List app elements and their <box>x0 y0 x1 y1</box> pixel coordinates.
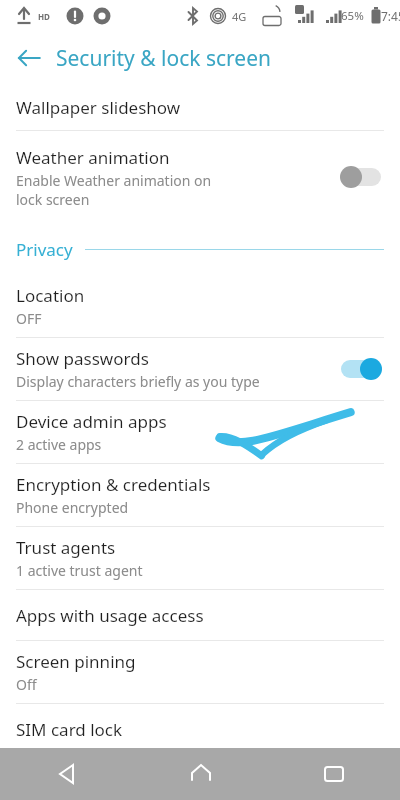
staticText: Device admin apps <box>16 410 167 433</box>
staticText: 1 active trust agent <box>16 561 143 580</box>
staticText: Privacy <box>16 238 73 261</box>
button[interactable]: Encryption & credentials <box>0 464 400 526</box>
staticText: Screen pinning <box>16 650 136 673</box>
button[interactable]: Weather animation <box>0 131 400 223</box>
staticText: Show passwords <box>16 347 149 370</box>
staticText: 7:45 <box>381 8 400 24</box>
staticText: 65% <box>341 8 364 24</box>
staticText: 4G <box>232 9 247 24</box>
staticText: 2 active apps <box>16 435 102 454</box>
button[interactable]: Back <box>0 748 134 800</box>
button[interactable]: Back <box>6 35 52 81</box>
staticText: Phone encrypted <box>16 498 129 517</box>
button[interactable]: Trust agents <box>0 527 400 589</box>
staticText: Apps with usage access <box>16 604 204 627</box>
button[interactable]: Device admin apps <box>0 401 400 463</box>
button[interactable]: Screen pinning <box>0 641 400 703</box>
button[interactable]: Switch off <box>338 164 384 190</box>
staticText: Off <box>16 675 37 694</box>
staticText: Enable Weather animation on lock screen <box>16 171 212 209</box>
button[interactable]: Wallpaper slideshow <box>0 84 400 130</box>
button[interactable]: Home <box>134 748 267 800</box>
staticText: SIM card lock <box>16 718 123 741</box>
staticText: Display characters briefly as you type <box>16 372 260 391</box>
staticText: Weather animation <box>16 146 170 169</box>
button[interactable]: SIM card lock <box>0 704 400 754</box>
staticText: Location <box>16 284 85 307</box>
button[interactable]: Switch on <box>338 356 384 382</box>
staticText: Encryption & credentials <box>16 473 211 496</box>
staticText: HD <box>38 11 50 22</box>
staticText: Trust agents <box>16 536 116 559</box>
staticText: Security & lock screen <box>56 44 272 73</box>
staticText: Wallpaper slideshow <box>16 96 181 119</box>
button[interactable]: Apps with usage access <box>0 590 400 640</box>
button[interactable]: Show passwords <box>0 338 400 400</box>
staticText: OFF <box>16 309 42 328</box>
button[interactable]: Location <box>0 275 400 337</box>
button[interactable]: Recents <box>267 748 400 800</box>
